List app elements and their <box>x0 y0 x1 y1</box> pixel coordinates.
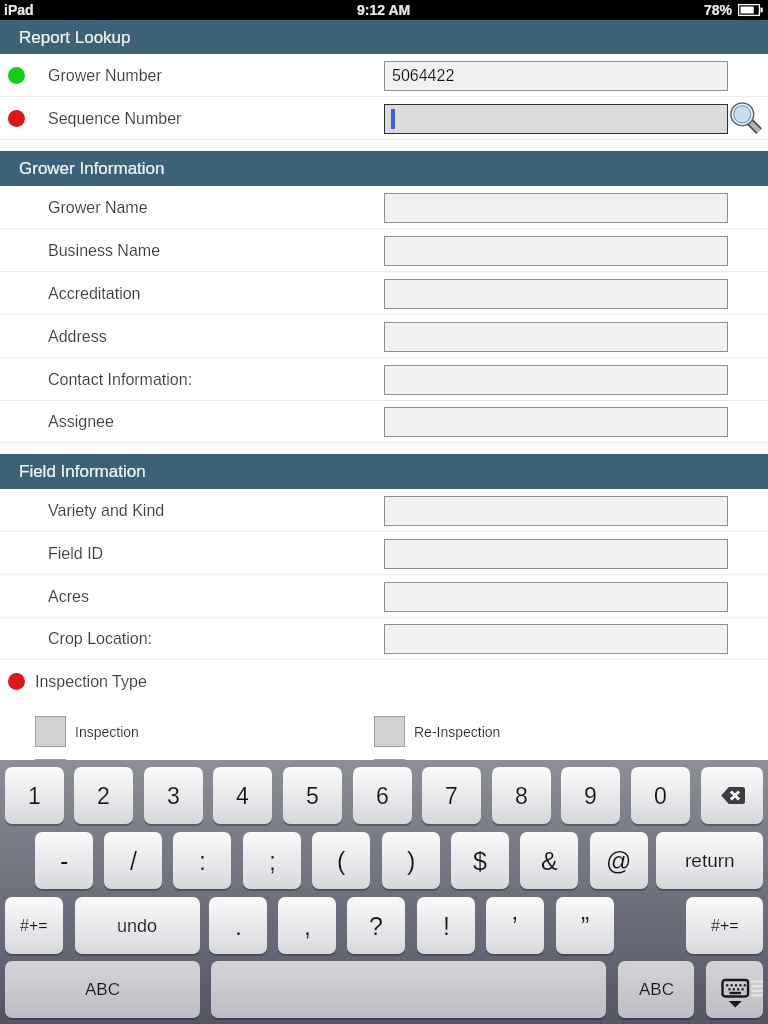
button[interactable]: 9 <box>561 767 620 824</box>
other: Hide keyboard <box>706 961 763 1020</box>
button[interactable]: 4 <box>213 767 272 824</box>
staticText: iPad <box>4 2 34 18</box>
button[interactable] <box>384 582 728 612</box>
button[interactable]: , <box>278 897 336 954</box>
button[interactable]: ” <box>556 897 614 954</box>
button[interactable] <box>384 104 728 134</box>
button[interactable]: Sequence Number <box>0 97 768 140</box>
button[interactable]: . <box>209 897 267 954</box>
staticText: 0 <box>654 783 667 809</box>
button[interactable]: 8 <box>492 767 551 824</box>
button[interactable]: ! <box>417 897 475 954</box>
staticText: 78% <box>704 2 733 18</box>
button[interactable]: Accreditation <box>0 272 768 315</box>
staticText: 5064422 <box>392 67 455 85</box>
button[interactable] <box>384 279 728 309</box>
staticText: - <box>60 847 69 875</box>
button[interactable]: ABC <box>618 961 694 1018</box>
button[interactable]: ? <box>347 897 405 954</box>
button[interactable]: undo <box>75 897 200 954</box>
staticText: , <box>304 912 311 940</box>
staticText: Business Name <box>48 242 161 260</box>
button[interactable]: #+= <box>686 897 763 954</box>
staticText: 5 <box>306 783 319 809</box>
staticText: Crop Location: <box>48 630 153 648</box>
button[interactable] <box>384 365 728 395</box>
staticText: Inspection Type <box>35 673 147 691</box>
button[interactable]: Business Name <box>0 229 768 272</box>
button[interactable]: Field ID <box>0 532 768 575</box>
button[interactable] <box>374 759 405 790</box>
button[interactable]: ABC <box>5 961 200 1018</box>
button[interactable]: ) <box>382 832 440 889</box>
button[interactable]: 1 <box>5 767 64 824</box>
button[interactable]: / <box>104 832 162 889</box>
button[interactable]: 3 <box>144 767 203 824</box>
button[interactable] <box>706 961 763 1018</box>
staticText: : <box>199 847 206 875</box>
button[interactable]: return <box>656 832 763 889</box>
button[interactable]: ; <box>243 832 301 889</box>
staticText: . <box>235 912 242 940</box>
button[interactable]: - <box>35 832 93 889</box>
button[interactable] <box>35 716 66 747</box>
button[interactable]: $ <box>451 832 509 889</box>
button[interactable]: ( <box>312 832 370 889</box>
button[interactable]: Grower Number <box>0 54 768 97</box>
staticText: Assignee <box>48 413 114 431</box>
button[interactable]: @ <box>590 832 648 889</box>
button[interactable]: Search <box>728 100 762 134</box>
button[interactable] <box>384 236 728 266</box>
staticText: #+= <box>711 917 739 935</box>
button[interactable]: Crop Location: <box>0 618 768 660</box>
button[interactable]: ’ <box>486 897 544 954</box>
staticText: 2 <box>97 783 110 809</box>
button[interactable] <box>374 716 405 747</box>
staticText: ( <box>337 847 346 875</box>
staticText: $ <box>473 847 487 875</box>
staticText: Report Lookup <box>19 28 131 47</box>
staticText: Field ID <box>48 545 104 563</box>
button[interactable]: 5 <box>283 767 342 824</box>
button[interactable] <box>384 624 728 654</box>
button[interactable] <box>384 322 728 352</box>
button[interactable]: 6 <box>353 767 412 824</box>
staticText: ” <box>581 912 590 940</box>
button[interactable] <box>384 407 728 437</box>
button[interactable]: #+= <box>5 897 63 954</box>
other: Space <box>211 961 606 1020</box>
button[interactable]: 7 <box>422 767 481 824</box>
staticText: @ <box>606 847 632 875</box>
button[interactable]: Grower Name <box>0 186 768 229</box>
button[interactable]: : <box>173 832 231 889</box>
button[interactable]: Variety and Kind <box>0 489 768 532</box>
staticText: ! <box>443 912 450 940</box>
button[interactable] <box>701 767 763 824</box>
staticText: ? <box>369 912 383 940</box>
staticText: undo <box>117 916 158 936</box>
button[interactable]: & <box>520 832 578 889</box>
button[interactable] <box>384 496 728 526</box>
button[interactable]: 2 <box>74 767 133 824</box>
staticText: return <box>685 850 735 871</box>
button[interactable] <box>211 961 606 1018</box>
staticText: Variety and Kind <box>48 502 165 520</box>
button[interactable]: Address <box>0 315 768 358</box>
staticText: 3 <box>167 783 180 809</box>
button[interactable] <box>384 193 728 223</box>
button[interactable]: Assignee <box>0 401 768 443</box>
button[interactable] <box>384 539 728 569</box>
button[interactable]: 0 <box>631 767 690 824</box>
staticText: Inspection <box>75 724 139 740</box>
button[interactable]: Acres <box>0 575 768 618</box>
staticText: Grower Information <box>19 159 165 178</box>
button[interactable]: Contact Information: <box>0 358 768 401</box>
button[interactable]: 5064422 <box>384 61 728 91</box>
staticText: 6 <box>376 783 389 809</box>
staticText: & <box>541 847 558 875</box>
staticText: 7 <box>445 783 458 809</box>
staticText: ’ <box>512 912 518 940</box>
staticText: Acres <box>48 588 89 606</box>
button[interactable] <box>35 759 66 790</box>
staticText: 9 <box>584 783 597 809</box>
